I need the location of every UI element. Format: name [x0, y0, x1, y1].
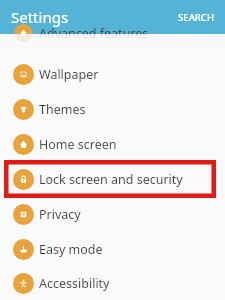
staticText: Accessibility: [39, 275, 110, 292]
staticText: Privacy: [39, 206, 81, 223]
staticText: Easy mode: [39, 241, 103, 258]
button[interactable]: Lock screen and security: [0, 162, 225, 197]
button[interactable]: Home screen: [0, 127, 225, 162]
staticText: Advanced features: [39, 25, 149, 42]
button[interactable]: Wallpaper: [0, 57, 225, 92]
button[interactable]: Themes: [0, 92, 225, 127]
staticText: Settings: [11, 7, 69, 27]
button[interactable]: SEARCH: [167, 5, 225, 30]
button[interactable]: Privacy: [0, 197, 225, 232]
button[interactable]: Advanced features: [0, 24, 225, 42]
button[interactable]: Easy mode: [0, 232, 225, 267]
staticText: Lock screen and security: [39, 171, 183, 188]
staticText: Home screen: [39, 136, 117, 153]
staticText: SEARCH: [178, 11, 214, 24]
button[interactable]: Accessibility: [0, 267, 225, 300]
staticText: Themes: [39, 101, 86, 118]
staticText: Wallpaper: [39, 66, 99, 83]
